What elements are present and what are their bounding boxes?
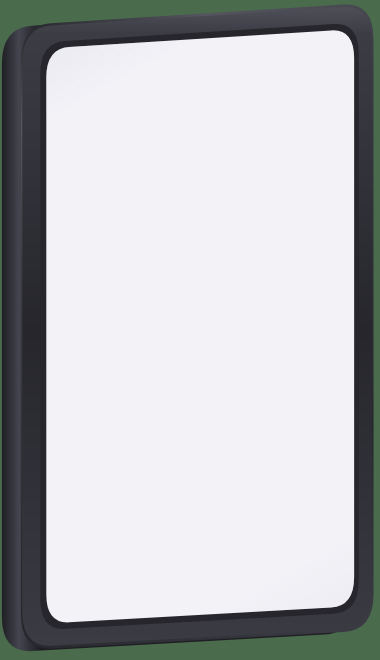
button[interactable]: Tablet device mockup with blank screen: [0, 0, 380, 660]
